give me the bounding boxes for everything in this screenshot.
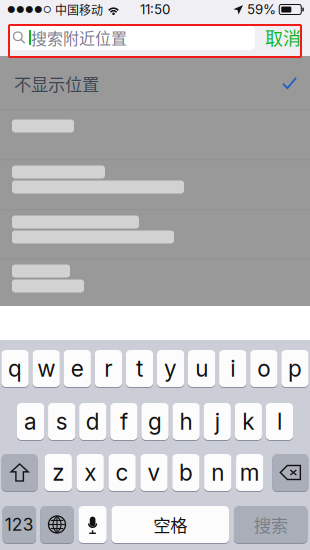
button[interactable]: l: [266, 402, 293, 440]
staticText: w: [37, 355, 55, 382]
button[interactable]: Switch keyboard: [40, 505, 74, 543]
staticText: 11:50: [140, 1, 170, 17]
button[interactable]: o: [250, 349, 277, 387]
staticText: r: [104, 355, 112, 382]
button[interactable]: y: [157, 349, 184, 387]
button[interactable]: 空格: [111, 505, 229, 543]
staticText: p: [288, 355, 302, 382]
button[interactable]: Delete: [272, 453, 308, 491]
button[interactable]: q: [1, 349, 29, 387]
staticText: x: [84, 459, 96, 486]
staticText: i: [230, 355, 235, 382]
button[interactable]: 123: [3, 505, 36, 543]
button[interactable]: s: [48, 402, 75, 440]
staticText: v: [147, 459, 160, 486]
staticText: f: [120, 408, 128, 435]
staticText: b: [179, 459, 193, 486]
button[interactable]: f: [110, 402, 137, 440]
staticText: 搜索附近位置: [31, 26, 127, 49]
staticText: e: [71, 355, 84, 382]
button[interactable]: j: [203, 402, 231, 440]
staticText: 不显示位置: [14, 71, 99, 96]
button[interactable]: h: [172, 402, 200, 440]
staticText: z: [52, 459, 64, 486]
staticText: u: [195, 355, 208, 382]
button[interactable]: c: [108, 453, 136, 491]
staticText: y: [164, 355, 177, 382]
button[interactable]: 取消: [263, 24, 303, 50]
button[interactable]: b: [172, 453, 199, 491]
button[interactable]: x: [76, 453, 104, 491]
button[interactable]: g: [141, 402, 169, 440]
staticText: 123: [5, 514, 34, 535]
button[interactable]: p: [281, 349, 309, 387]
staticText: ●●●●: [7, 4, 43, 15]
staticText: s: [56, 408, 68, 435]
staticText: 59%: [247, 1, 276, 17]
staticText: d: [86, 408, 100, 435]
button[interactable]: z: [45, 453, 72, 491]
button[interactable]: w: [32, 349, 60, 387]
button[interactable]: [0, 160, 310, 209]
staticText: 搜索: [254, 512, 288, 537]
staticText: l: [277, 408, 282, 435]
staticText: 空格: [153, 512, 187, 537]
button[interactable]: i: [219, 349, 246, 387]
staticText: 中国移动: [52, 1, 103, 18]
staticText: m: [240, 459, 260, 486]
button[interactable]: 搜索: [234, 505, 307, 543]
button[interactable]: e: [64, 349, 91, 387]
staticText: 取消: [265, 24, 301, 51]
button[interactable]: v: [140, 453, 168, 491]
button[interactable]: [0, 259, 310, 304]
button[interactable]: r: [95, 349, 122, 387]
staticText: c: [116, 459, 129, 486]
button[interactable]: Dictate: [78, 505, 107, 543]
staticText: o: [257, 355, 270, 382]
staticText: g: [148, 408, 162, 435]
staticText: t: [136, 355, 143, 382]
staticText: h: [180, 408, 193, 435]
staticText: a: [24, 408, 37, 435]
button[interactable]: u: [188, 349, 215, 387]
button[interactable]: [0, 210, 310, 258]
staticText: n: [211, 459, 224, 486]
button[interactable]: Shift: [2, 453, 38, 491]
button[interactable]: d: [79, 402, 106, 440]
staticText: j: [215, 408, 220, 435]
button[interactable]: k: [235, 402, 262, 440]
button[interactable]: t: [126, 349, 153, 387]
staticText: ○: [43, 4, 52, 15]
button[interactable]: m: [236, 453, 263, 491]
staticText: k: [242, 408, 254, 435]
button[interactable]: n: [204, 453, 231, 491]
button[interactable]: a: [17, 402, 44, 440]
button[interactable]: 不显示位置: [0, 57, 310, 109]
staticText: q: [8, 355, 22, 382]
button[interactable]: [0, 110, 310, 159]
